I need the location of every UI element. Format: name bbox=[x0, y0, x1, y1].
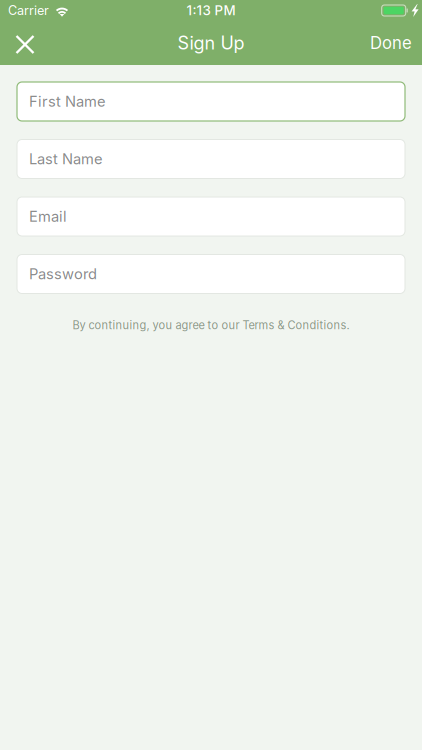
button[interactable]: First Name bbox=[17, 82, 405, 121]
button[interactable]: Close bbox=[4, 21, 46, 65]
staticText: Sign Up bbox=[177, 32, 244, 54]
staticText: Last Name bbox=[29, 150, 103, 168]
staticText: 1:13 PM bbox=[186, 2, 235, 18]
staticText: By continuing, you agree to our Terms & … bbox=[72, 318, 349, 332]
button[interactable]: Last Name bbox=[17, 139, 405, 178]
staticText: Email bbox=[29, 208, 67, 225]
button[interactable]: Password bbox=[17, 254, 405, 293]
button[interactable]: Email bbox=[17, 197, 405, 236]
staticText: Done bbox=[370, 33, 412, 53]
staticText: Password bbox=[29, 265, 97, 283]
staticText: First Name bbox=[29, 93, 106, 110]
button[interactable]: Done bbox=[348, 22, 422, 64]
staticText: Carrier bbox=[8, 3, 49, 18]
